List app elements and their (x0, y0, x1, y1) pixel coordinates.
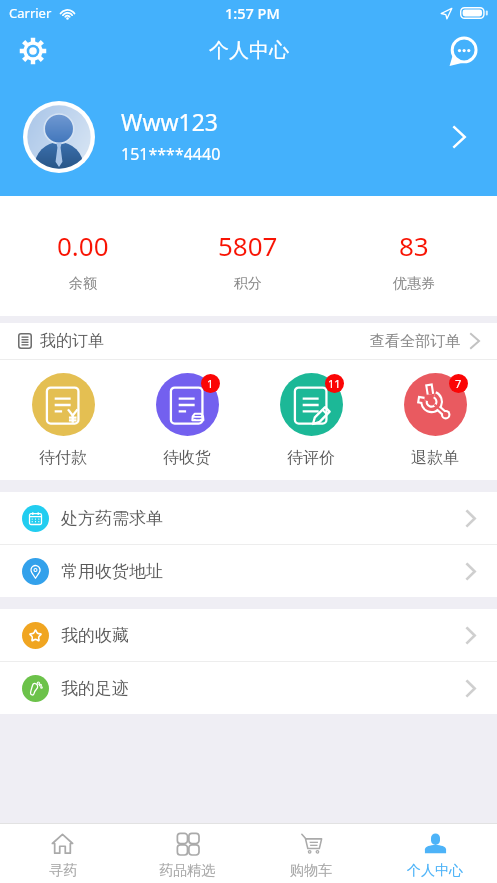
button[interactable]: 处方药需求单 (0, 492, 497, 544)
staticText: 待收货 (163, 448, 211, 468)
button[interactable]: 常用收货地址 (0, 545, 497, 597)
staticText: 1:57 PM (225, 3, 280, 23)
staticText: 处方药需求单 (61, 508, 163, 529)
staticText: 待付款 (39, 448, 87, 468)
button[interactable]: Settings (15, 33, 51, 69)
staticText: 个人中心 (407, 862, 463, 880)
staticText: 0.00 (57, 228, 109, 263)
staticText: Carrier (9, 4, 52, 22)
button[interactable]: 83 (331, 196, 497, 316)
staticText: 优惠券 (393, 275, 435, 293)
staticText: 151****4440 (121, 143, 221, 165)
staticText: 退款单 (411, 448, 459, 468)
button[interactable]: 0.00 (0, 196, 165, 316)
button[interactable]: 我的订单 (0, 323, 497, 359)
staticText: 购物车 (290, 862, 332, 880)
button[interactable]: 5807 (165, 196, 331, 316)
button[interactable]: 7 (373, 360, 497, 480)
staticText: 11 (328, 376, 341, 391)
staticText: 7 (455, 376, 462, 391)
button[interactable]: 寻药 (0, 824, 125, 883)
staticText: 83 (399, 228, 429, 263)
button[interactable]: 药品精选 (125, 824, 249, 883)
staticText: 我的订单 (40, 331, 104, 351)
staticText: 5807 (218, 228, 278, 263)
button[interactable]: 我的收藏 (0, 609, 497, 661)
button[interactable]: 待付款 (0, 360, 125, 480)
button[interactable]: 1 (125, 360, 249, 480)
staticText: 1 (207, 376, 214, 391)
staticText: 待评价 (287, 448, 335, 468)
staticText: Www123 (121, 106, 219, 137)
staticText: 我的收藏 (61, 625, 129, 646)
staticText: 余额 (69, 275, 97, 293)
button[interactable]: 11 (249, 360, 373, 480)
button[interactable]: Www123 (0, 100, 497, 173)
staticText: 查看全部订单 (370, 332, 460, 351)
button[interactable]: 个人中心 (373, 824, 497, 883)
staticText: 积分 (234, 275, 262, 293)
staticText: 个人中心 (209, 38, 289, 63)
button[interactable]: 购物车 (249, 824, 373, 883)
staticText: 寻药 (49, 862, 77, 880)
staticText: 我的足迹 (61, 678, 129, 699)
button[interactable]: Messages (445, 33, 481, 69)
button[interactable]: 我的足迹 (0, 662, 497, 714)
staticText: 药品精选 (159, 862, 215, 880)
staticText: 常用收货地址 (61, 561, 163, 582)
